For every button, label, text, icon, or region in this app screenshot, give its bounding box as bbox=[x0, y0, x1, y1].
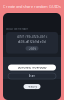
button[interactable]: Generate new GUID bbox=[8, 65, 56, 71]
staticText: Share bbox=[28, 74, 35, 78]
staticText: Create and share random GUIDs bbox=[3, 4, 61, 9]
staticText: a506-af1f2b9a1e0d bbox=[18, 40, 46, 44]
staticText: GUID Generator bbox=[6, 27, 28, 30]
staticText: Generate new GUID bbox=[17, 66, 46, 69]
staticText: c4f3178b-4f2b-4b1c bbox=[17, 35, 47, 38]
staticText: History bbox=[27, 85, 36, 88]
button[interactable]: Copy bbox=[25, 46, 38, 51]
button[interactable]: Share bbox=[8, 73, 56, 79]
staticText: Copy bbox=[28, 47, 35, 50]
button[interactable]: History bbox=[23, 84, 40, 89]
